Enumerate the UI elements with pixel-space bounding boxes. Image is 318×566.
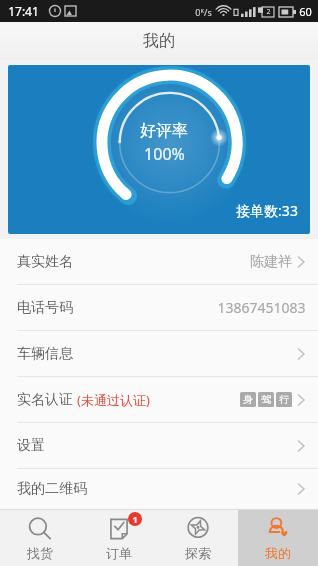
- button[interactable]: 我的: [238, 510, 318, 566]
- button[interactable]: 电话号码: [0, 285, 318, 330]
- staticText: 0ᴷ/s: [195, 6, 212, 18]
- staticText: 60: [299, 4, 312, 19]
- staticText: 探索: [185, 545, 211, 561]
- staticText: 订单: [106, 545, 132, 561]
- button[interactable]: 订单: [79, 510, 158, 566]
- staticText: 2: [266, 7, 271, 17]
- staticText: 17:41: [8, 3, 39, 19]
- staticText: 100%: [144, 143, 185, 165]
- button[interactable]: 真实姓名: [0, 239, 318, 284]
- staticText: 电话号码: [17, 299, 73, 317]
- other: 探索: [185, 516, 211, 542]
- staticText: 接单数:33: [236, 201, 298, 220]
- other: 订单: [106, 516, 132, 542]
- staticText: 实名认证: [17, 391, 73, 409]
- button[interactable]: 实名认证: [0, 377, 318, 422]
- staticText: 我的: [143, 31, 175, 51]
- other: 找货: [27, 516, 53, 542]
- staticText: 驾: [261, 393, 271, 406]
- other: 我的: [265, 516, 291, 542]
- staticText: 设置: [17, 437, 45, 455]
- button[interactable]: 探索: [158, 510, 238, 566]
- staticText: 行: [279, 393, 289, 406]
- staticText: 我的: [265, 545, 291, 561]
- staticText: 1: [132, 513, 138, 525]
- staticText: 13867451083: [217, 298, 306, 317]
- button[interactable]: 找货: [0, 510, 79, 566]
- button[interactable]: 设置: [0, 423, 318, 468]
- staticText: 车辆信息: [17, 345, 73, 363]
- staticText: 身: [243, 393, 253, 406]
- button[interactable]: 车辆信息: [0, 331, 318, 376]
- button[interactable]: 我的二维码: [0, 469, 318, 509]
- staticText: 我的二维码: [17, 480, 87, 498]
- staticText: 陈建祥: [250, 253, 292, 271]
- staticText: 找货: [27, 545, 53, 561]
- staticText: (未通过认证): [77, 391, 150, 409]
- staticText: 好评率: [140, 121, 188, 141]
- staticText: 真实姓名: [17, 253, 73, 271]
